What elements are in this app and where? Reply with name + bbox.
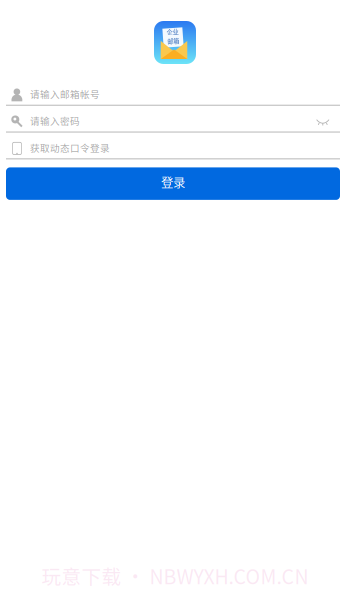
button[interactable]: 请输入邮箱帐号: [6, 79, 340, 105]
staticText: 登录: [161, 173, 185, 191]
staticText: 获取动态口令登录: [30, 140, 110, 154]
button[interactable]: 登录: [6, 167, 340, 200]
staticText: 请输入密码: [30, 114, 80, 128]
button[interactable]: Show password: [306, 106, 340, 131]
staticText: 请输入邮箱帐号: [30, 87, 100, 101]
staticText: 玩意下载 · NBWYXH.COM.CN: [41, 562, 308, 590]
button[interactable]: 请输入密码: [6, 106, 306, 131]
staticText: 企业: [167, 27, 179, 36]
button[interactable]: 获取动态口令登录: [6, 133, 340, 158]
staticText: 邮箱: [167, 36, 179, 45]
